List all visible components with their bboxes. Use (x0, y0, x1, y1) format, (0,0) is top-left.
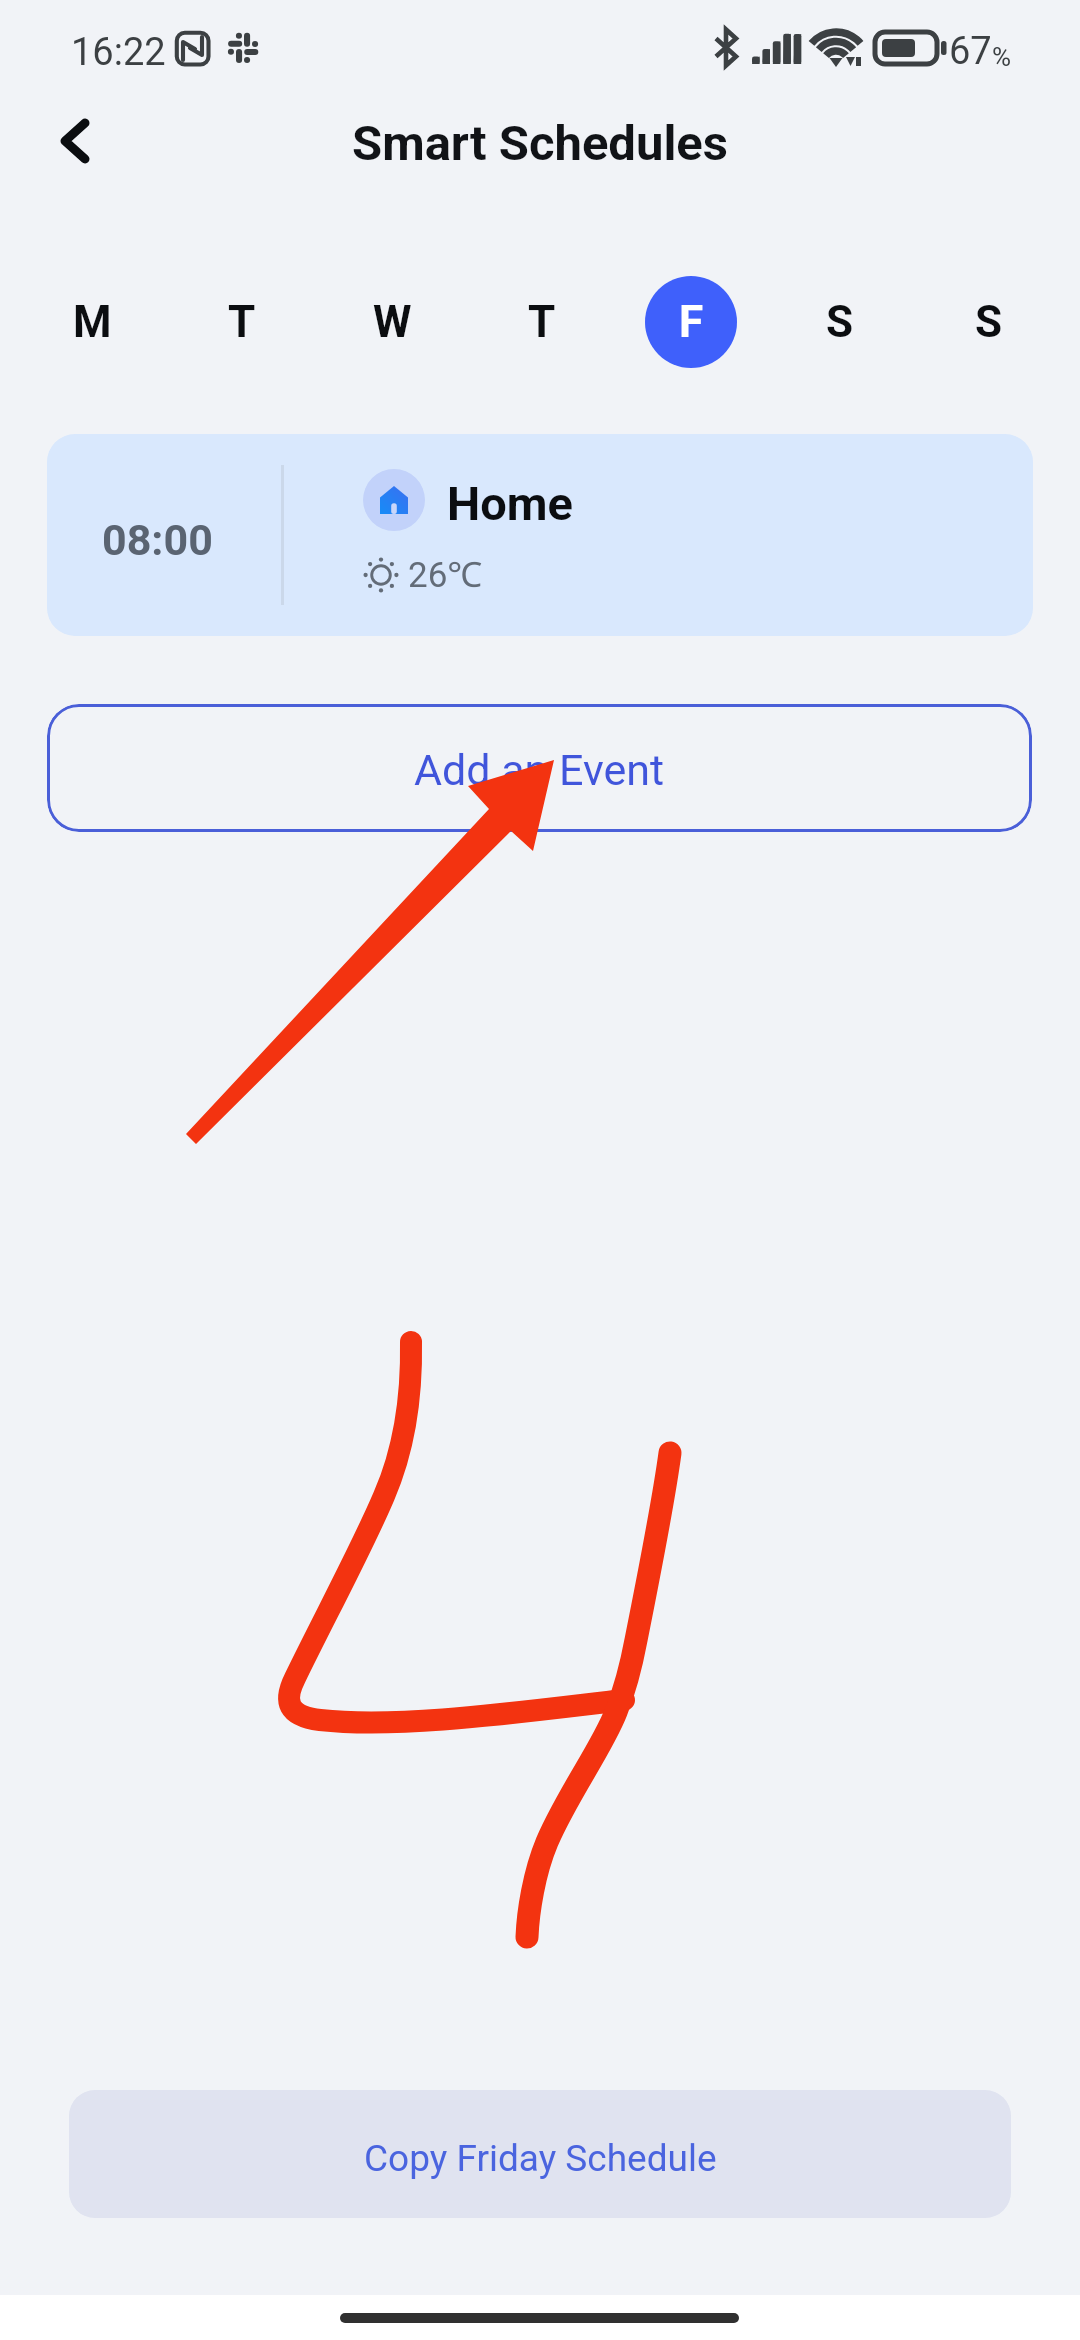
staticText: W (373, 296, 412, 348)
staticText: 67 (949, 29, 992, 74)
staticText: Home (447, 476, 573, 531)
button[interactable]: T (167, 276, 317, 368)
button[interactable]: 08:00 (47, 434, 1033, 636)
staticText: T (528, 296, 556, 348)
button[interactable]: Add an Event (47, 704, 1032, 832)
button[interactable]: Back (30, 96, 120, 186)
staticText: 16:22 (71, 30, 166, 75)
button[interactable]: Copy Friday Schedule (69, 2090, 1011, 2218)
staticText: M (73, 296, 112, 348)
button[interactable]: T (467, 276, 616, 368)
staticText: Copy Friday Schedule (364, 2137, 717, 2180)
staticText: Add an Event (414, 745, 665, 795)
staticText: 08:00 (102, 515, 213, 565)
staticText: % (992, 42, 1012, 72)
staticText: T (228, 296, 256, 348)
staticText: Smart Schedules (352, 115, 728, 172)
button[interactable]: W (317, 276, 467, 368)
button[interactable]: S (914, 276, 1063, 368)
button[interactable]: F (616, 276, 765, 368)
staticText: F (679, 296, 704, 348)
staticText: 26℃ (408, 550, 483, 598)
staticText: S (975, 296, 1003, 348)
button[interactable]: S (765, 276, 914, 368)
button[interactable]: M (17, 276, 167, 368)
staticText: S (826, 296, 854, 348)
